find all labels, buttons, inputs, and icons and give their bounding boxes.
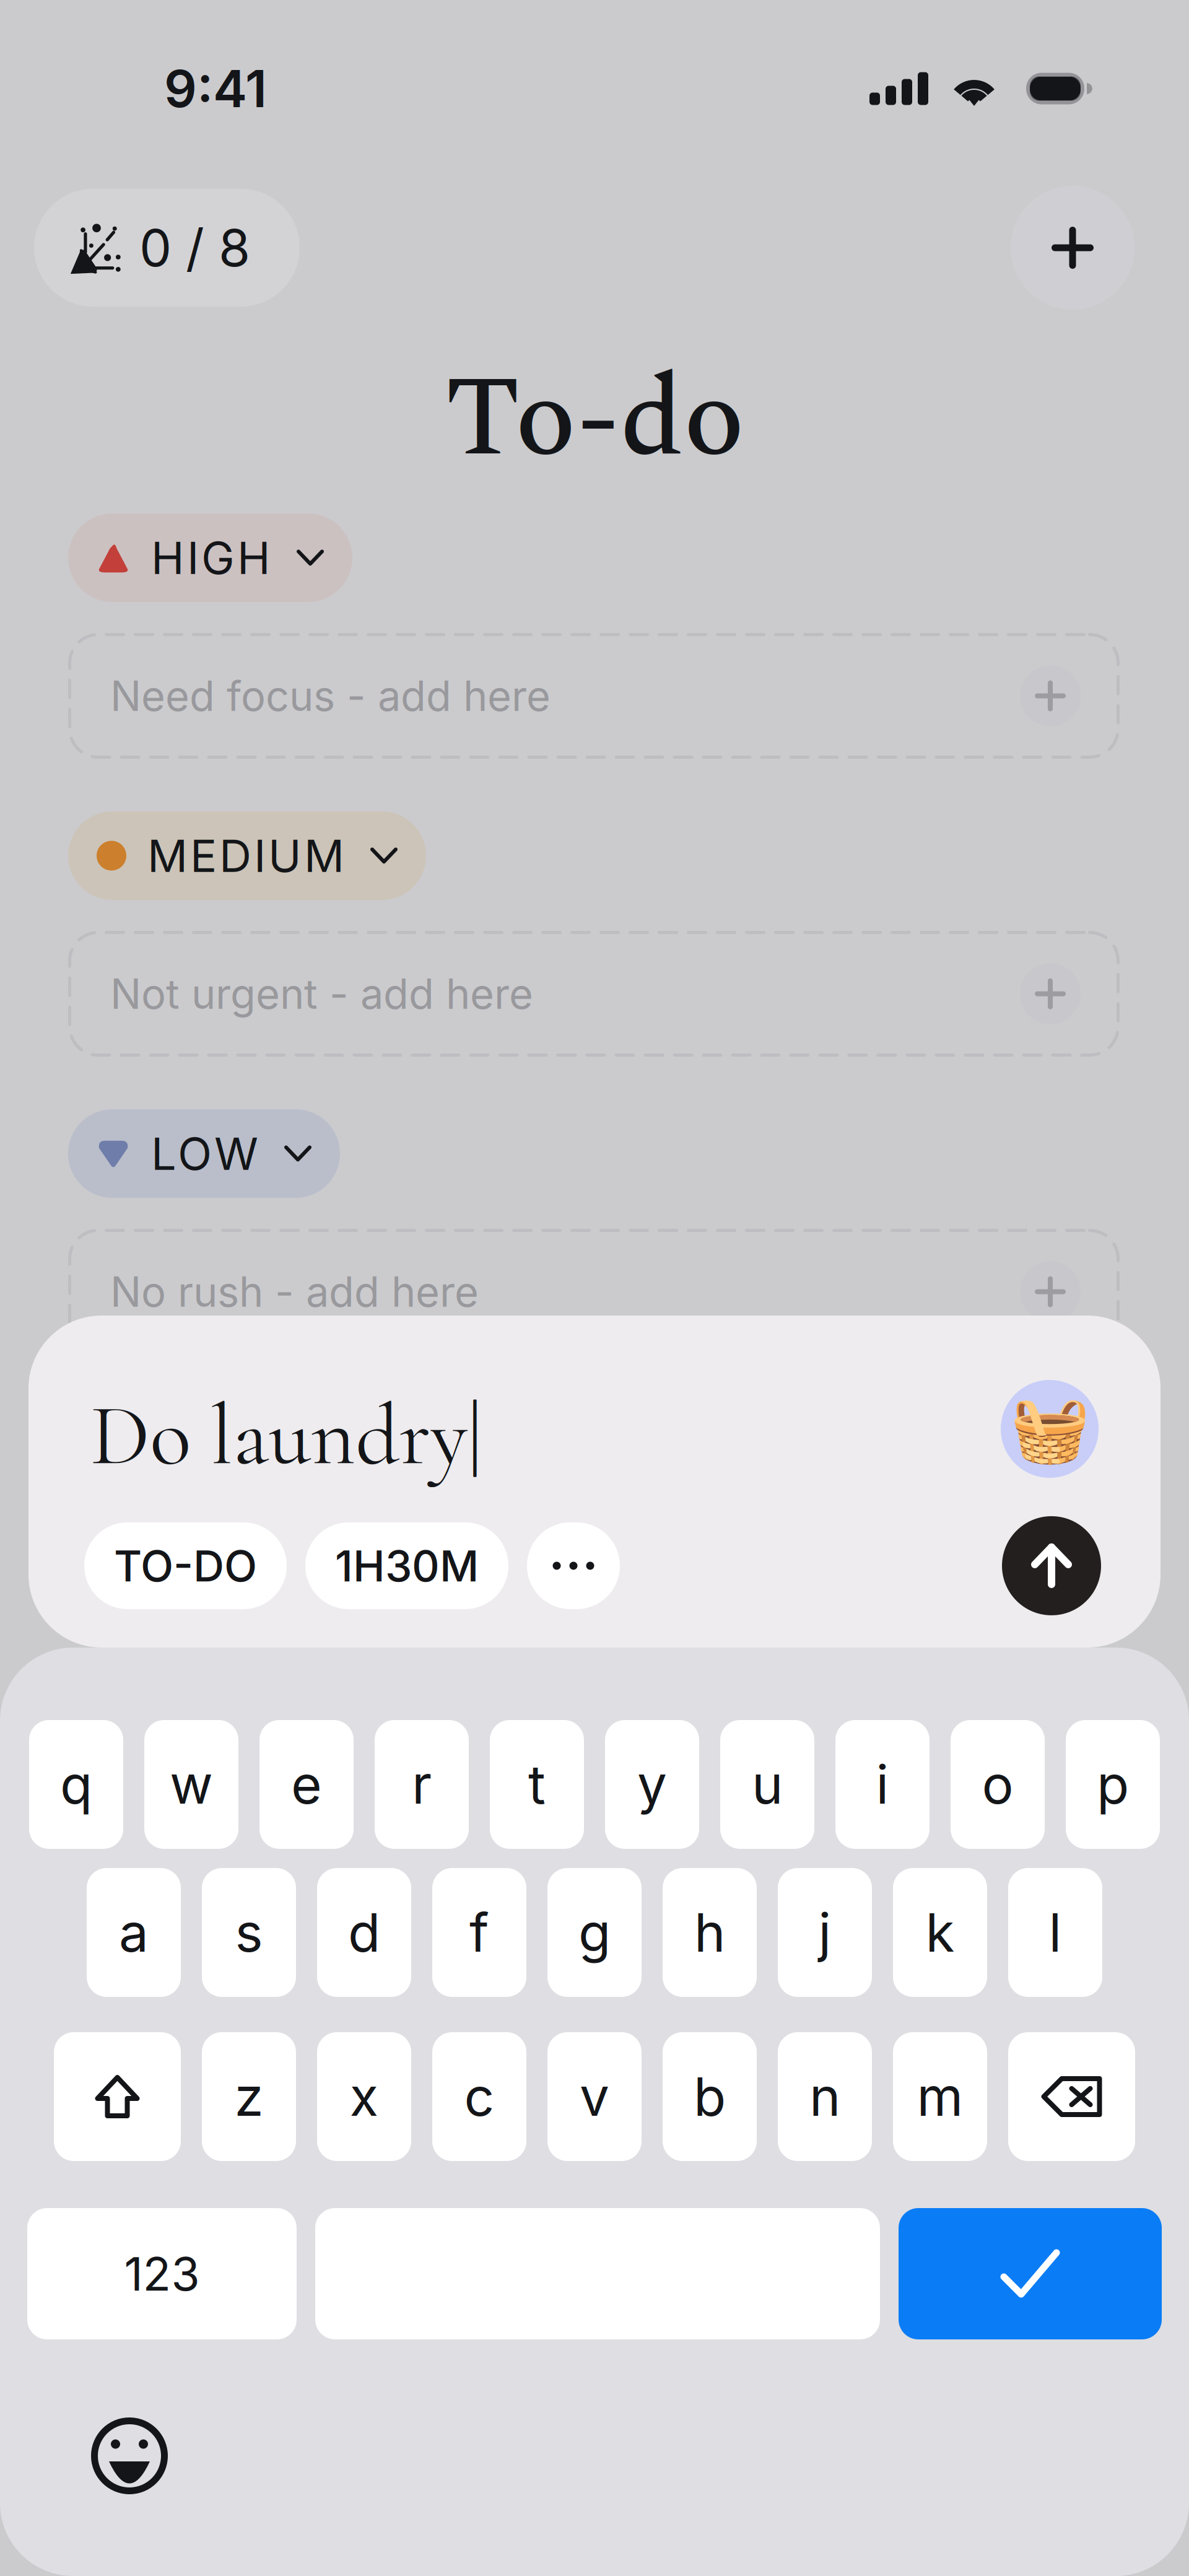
button[interactable]: Shift [54, 2032, 181, 2161]
staticText: j [818, 1901, 831, 1964]
staticText: k [926, 1901, 955, 1964]
button[interactable]: l [1008, 1868, 1102, 1997]
button[interactable]: p [1066, 1720, 1160, 1849]
staticText: f [469, 1901, 489, 1964]
staticText: u [752, 1752, 783, 1816]
staticText: 🧺 [1010, 1391, 1090, 1467]
button[interactable]: e [259, 1720, 354, 1849]
button[interactable]: 1H30M [305, 1522, 508, 1609]
button[interactable]: Delete [1008, 2032, 1135, 2161]
staticText: 0 / 8 [139, 217, 250, 279]
staticText: x [350, 2065, 379, 2129]
button[interactable]: r [375, 1720, 469, 1849]
button[interactable]: h [663, 1868, 757, 1997]
button[interactable]: v [547, 2032, 642, 2161]
staticText: h [694, 1901, 725, 1964]
staticText: 123 [124, 2246, 200, 2302]
staticText: p [1097, 1752, 1129, 1816]
staticText: o [982, 1752, 1013, 1816]
button[interactable]: u [720, 1720, 814, 1849]
button[interactable]: o [951, 1720, 1045, 1849]
button[interactable]: q [29, 1720, 123, 1849]
button[interactable]: MEDIUM [68, 811, 426, 900]
button[interactable]: y [605, 1720, 699, 1849]
button[interactable]: s [202, 1868, 296, 1997]
button[interactable]: Emoji keyboard [90, 2416, 169, 2495]
staticText: To-do [445, 334, 744, 505]
button[interactable]: n [778, 2032, 872, 2161]
button[interactable]: m [893, 2032, 987, 2161]
staticText: d [348, 1901, 380, 1964]
button[interactable]: Add to list [1002, 1516, 1101, 1615]
staticText: t [528, 1752, 546, 1816]
button[interactable]: Not urgent - add here [68, 931, 1120, 1057]
staticText: i [876, 1752, 889, 1816]
button[interactable]: 0 / 8 [34, 189, 300, 307]
staticText: z [234, 2065, 263, 2129]
staticText: LOW [151, 1127, 258, 1181]
staticText: l [1049, 1901, 1062, 1964]
staticText: 9:41 [164, 58, 267, 120]
button[interactable]: b [663, 2032, 757, 2161]
staticText: m [917, 2065, 963, 2129]
staticText: b [694, 2065, 726, 2129]
button[interactable]: TO-DO [84, 1522, 287, 1609]
button[interactable]: Add task [1011, 186, 1135, 310]
button[interactable]: k [893, 1868, 987, 1997]
button[interactable]: Need focus - add here [68, 633, 1120, 759]
staticText: MEDIUM [147, 829, 344, 883]
staticText: HIGH [151, 531, 271, 585]
button[interactable]: w [144, 1720, 238, 1849]
staticText: n [809, 2065, 840, 2129]
staticText: e [291, 1752, 322, 1816]
staticText: a [119, 1901, 149, 1964]
button[interactable]: d [317, 1868, 411, 1997]
button[interactable]: x [317, 2032, 411, 2161]
button[interactable]: f [432, 1868, 526, 1997]
button[interactable]: t [490, 1720, 584, 1849]
staticText: No rush - add here [110, 1267, 479, 1317]
staticText: Not urgent - add here [110, 969, 533, 1019]
staticText: TO-DO [114, 1540, 257, 1592]
staticText: Need focus - add here [110, 671, 551, 721]
button[interactable]: HIGH [68, 513, 352, 602]
button[interactable]: No rush - add here [68, 1229, 1120, 1355]
button[interactable]: 123 [27, 2208, 297, 2339]
staticText: 1H30M [335, 1540, 479, 1592]
button[interactable]: j [778, 1868, 872, 1997]
button[interactable]: i [835, 1720, 930, 1849]
staticText: Do laundry| [90, 1384, 482, 1488]
button[interactable]: c [432, 2032, 526, 2161]
button[interactable]: g [547, 1868, 642, 1997]
staticText: w [170, 1752, 213, 1816]
button[interactable] [315, 2208, 880, 2339]
staticText: y [637, 1752, 667, 1816]
button[interactable]: a [87, 1868, 181, 1997]
staticText: s [235, 1901, 263, 1964]
button[interactable]: z [202, 2032, 296, 2161]
staticText: c [464, 2065, 494, 2129]
staticText: v [580, 2065, 609, 2129]
staticText: q [60, 1752, 92, 1816]
staticText: g [578, 1901, 611, 1964]
staticText: r [412, 1752, 432, 1816]
button[interactable]: LOW [68, 1109, 340, 1198]
button[interactable]: More options [527, 1522, 620, 1609]
button[interactable]: Done [899, 2208, 1162, 2339]
